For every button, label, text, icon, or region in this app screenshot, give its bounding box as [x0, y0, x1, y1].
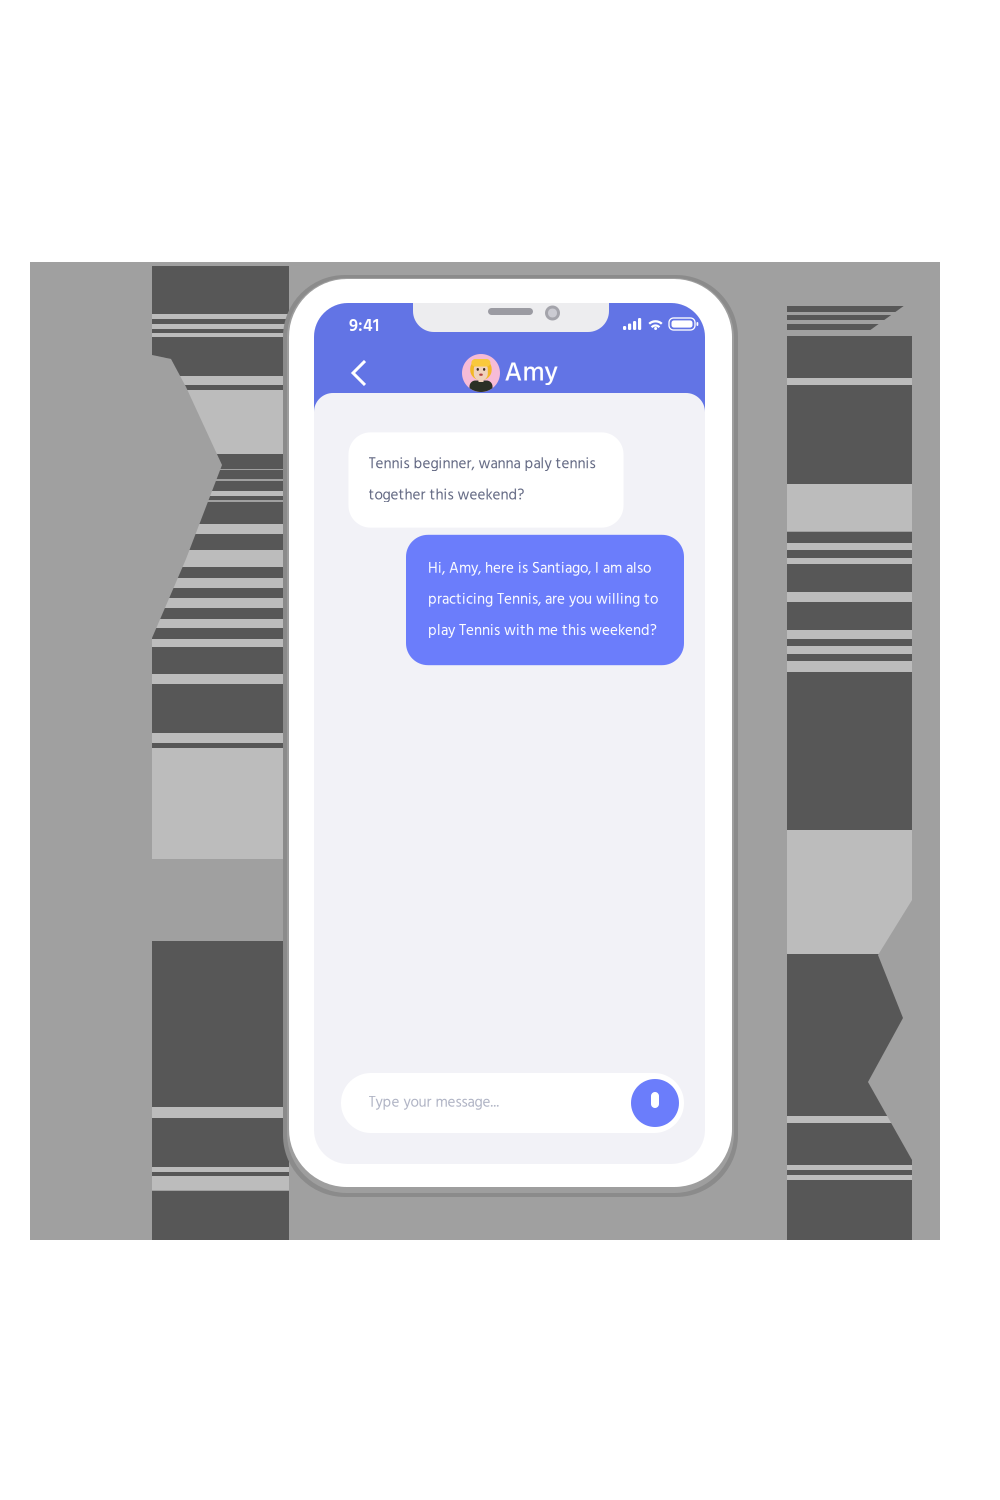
staticText: 9:41	[349, 313, 379, 340]
staticText: Type your message...	[368, 1091, 499, 1115]
button[interactable]: Back	[339, 351, 383, 395]
staticText: Amy	[504, 352, 557, 395]
staticText: Tennis beginner, wanna paly tennis toget…	[368, 452, 595, 508]
button[interactable]: Record voice message	[631, 1079, 679, 1127]
staticText: Hi, Amy, here is Santiago, I am also pra…	[428, 557, 658, 643]
